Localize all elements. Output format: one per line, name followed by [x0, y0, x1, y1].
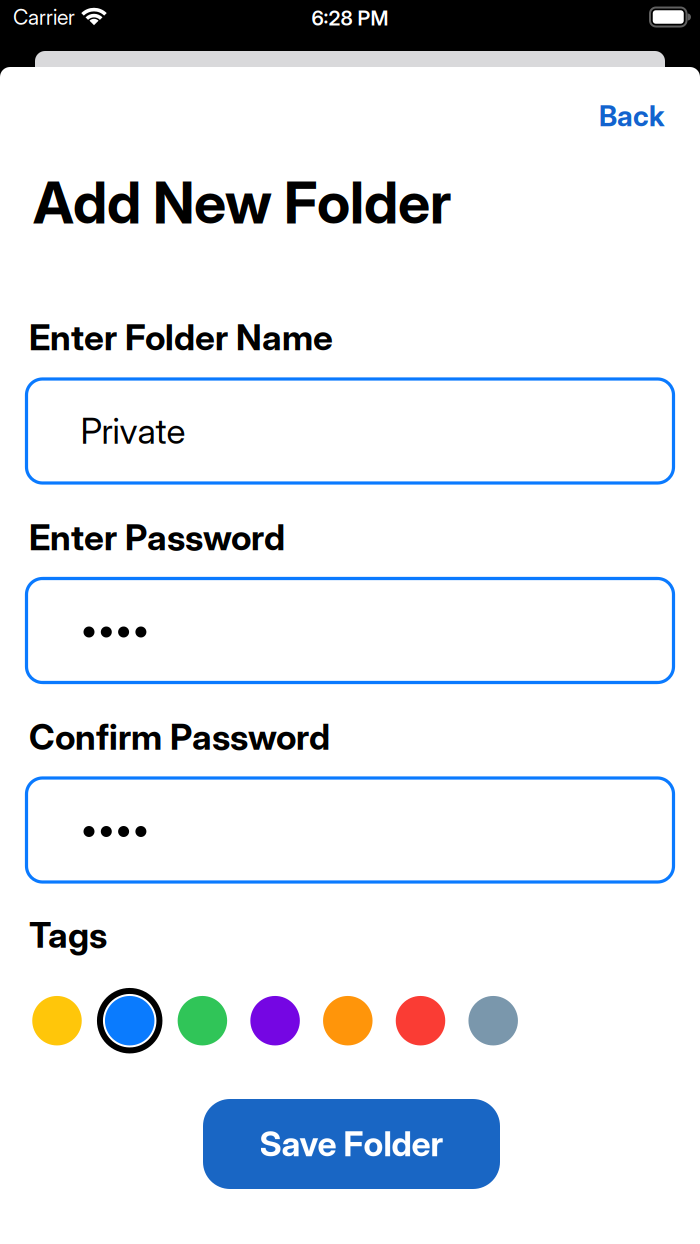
staticText: Save Folder [259, 1123, 443, 1164]
button[interactable]: Orange tag [323, 996, 373, 1046]
staticText: 6:28 PM [311, 6, 388, 30]
staticText: Carrier [13, 4, 75, 30]
staticText: Confirm Password [29, 715, 330, 758]
button[interactable]: Back [599, 99, 665, 133]
button[interactable]: Green tag [177, 996, 227, 1046]
button[interactable]: Blue tag [105, 996, 155, 1046]
staticText: Back [599, 99, 665, 133]
staticText: Enter Password [29, 516, 285, 559]
button[interactable]: Purple tag [250, 996, 300, 1046]
staticText: Private [80, 410, 185, 452]
staticText: Tags [29, 913, 107, 956]
staticText: Enter Folder Name [29, 316, 333, 359]
staticText: Add New Folder [33, 168, 451, 237]
button[interactable]: Save Folder [203, 1099, 500, 1189]
button[interactable]: Gray tag [468, 996, 518, 1046]
button[interactable]: Yellow tag [32, 996, 82, 1046]
button[interactable]: Red tag [395, 996, 445, 1046]
